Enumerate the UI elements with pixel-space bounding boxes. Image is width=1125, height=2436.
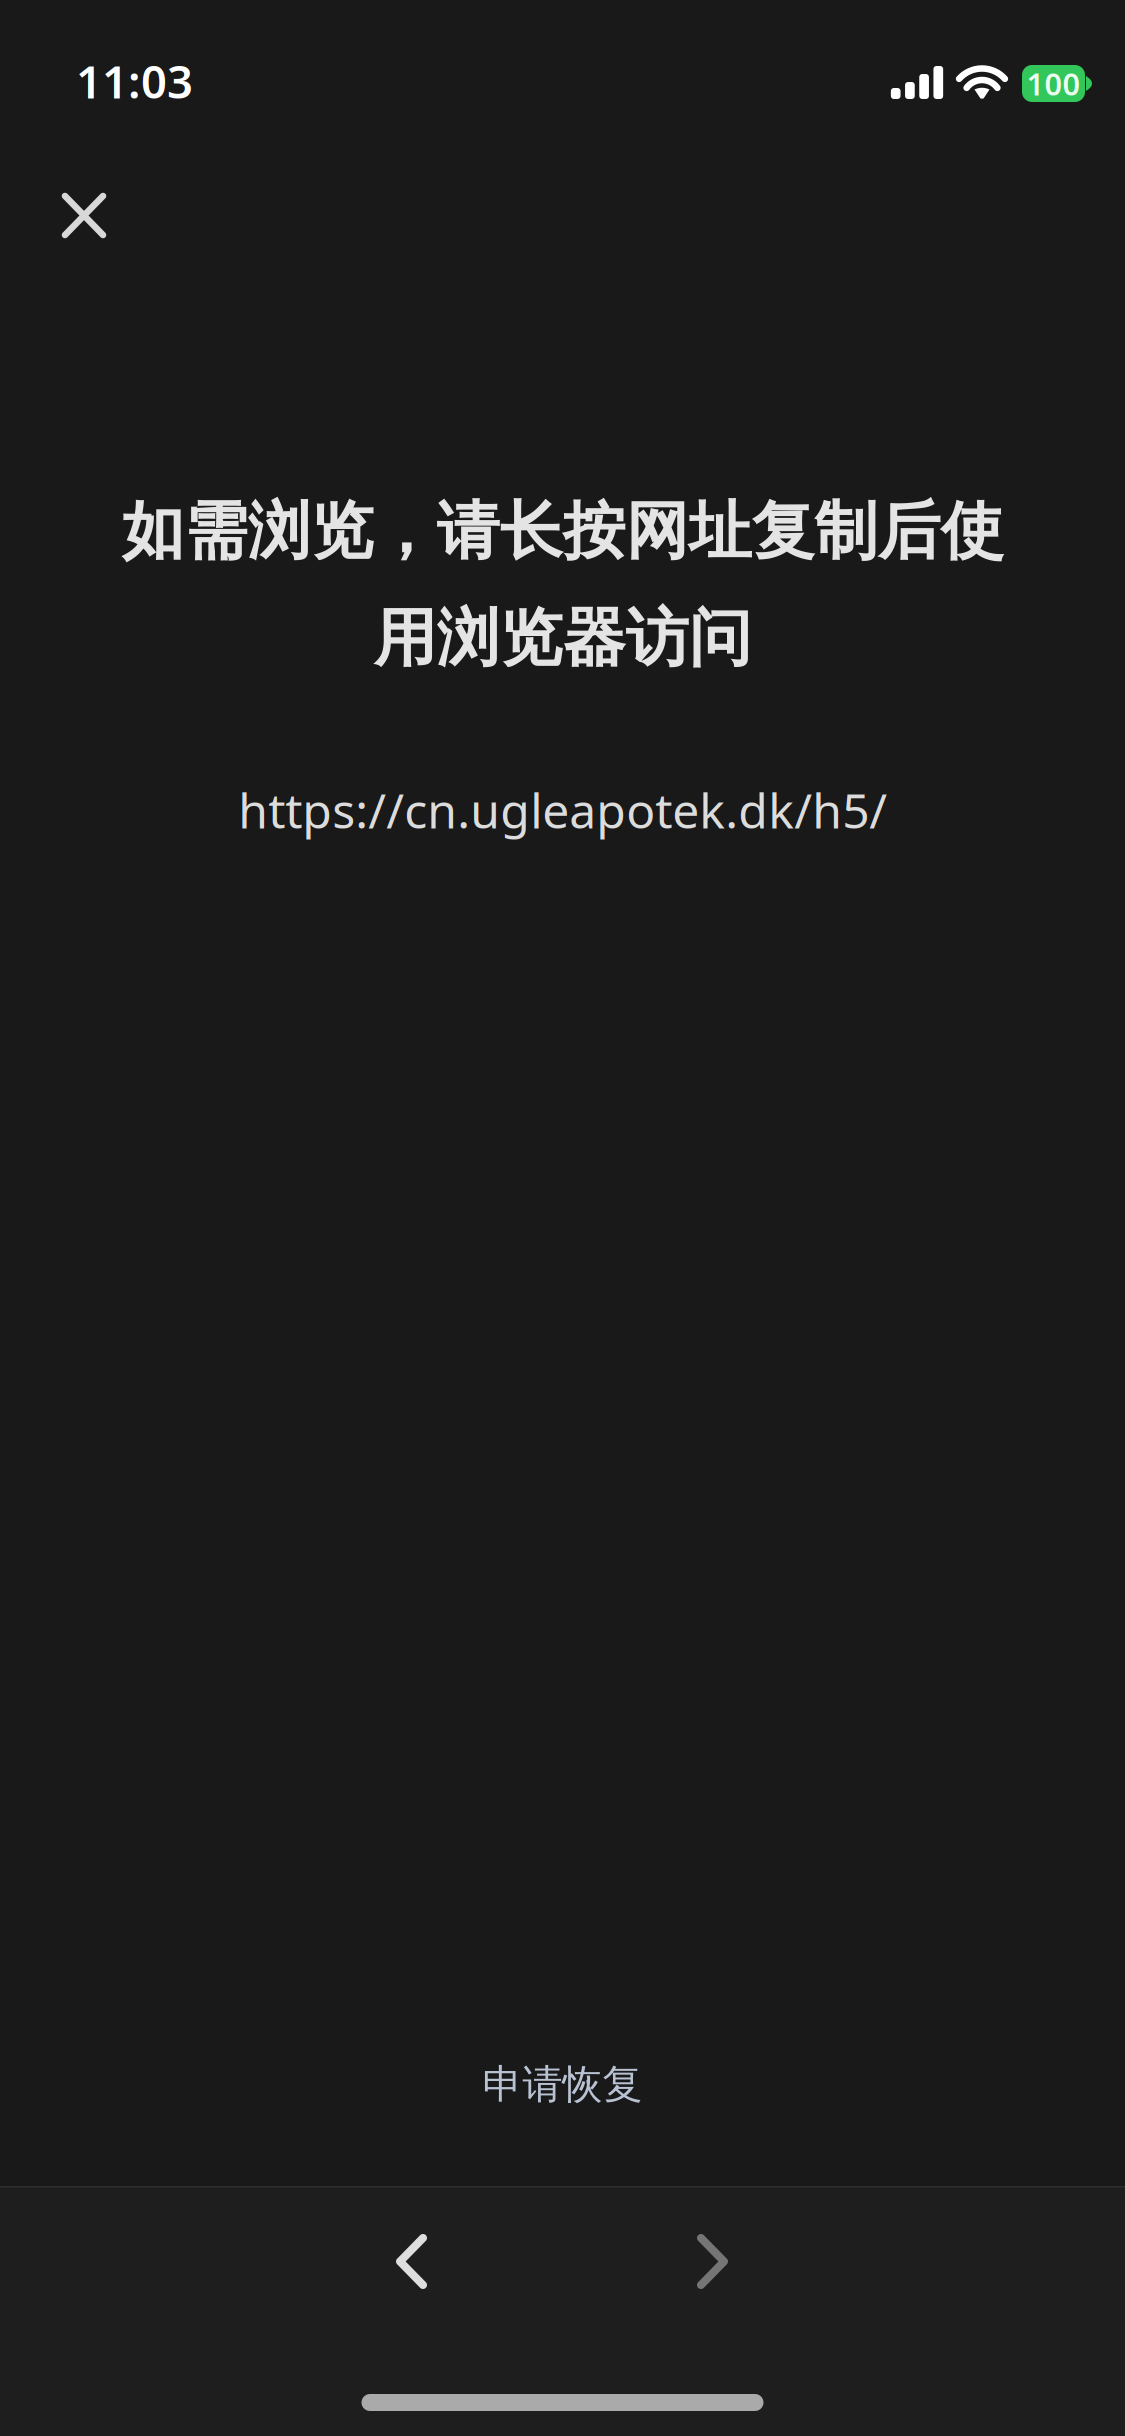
staticText: 11:03	[76, 51, 193, 111]
staticText: 申请恢复	[482, 2060, 642, 2109]
button[interactable]: 申请恢复	[0, 2030, 1125, 2186]
button[interactable]: Forward	[656, 2193, 769, 2330]
staticText: https://cn.ugleapotek.dk/h5/	[238, 778, 887, 842]
staticText: 如需浏览，请长按网址复制后使用浏览器访问	[121, 493, 1003, 677]
staticText: 100	[1026, 63, 1080, 104]
button[interactable]: Close	[29, 160, 139, 271]
button[interactable]: Back	[355, 2193, 468, 2330]
